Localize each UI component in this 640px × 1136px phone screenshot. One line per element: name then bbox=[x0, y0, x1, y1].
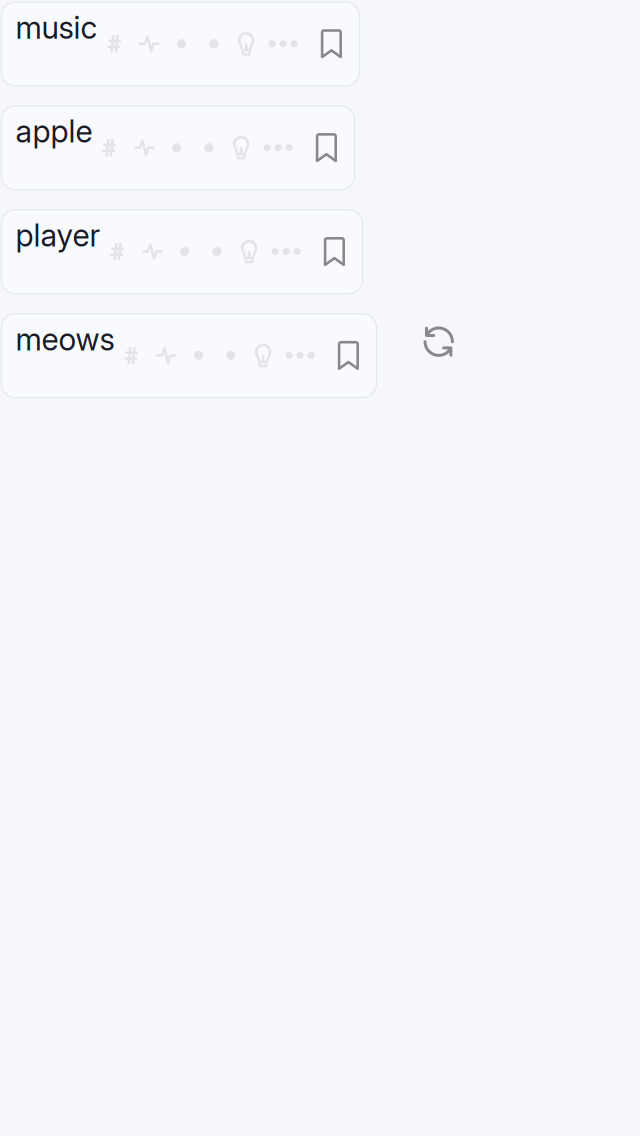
staticText: meows bbox=[15, 321, 114, 358]
button[interactable]: apple bbox=[1, 106, 354, 190]
button[interactable]: Refresh bbox=[415, 318, 462, 365]
button[interactable]: music bbox=[1, 2, 359, 86]
staticText: player bbox=[15, 217, 100, 254]
staticText: music bbox=[15, 9, 97, 46]
button[interactable]: meows bbox=[1, 314, 376, 398]
staticText: apple bbox=[15, 113, 92, 150]
button[interactable]: player bbox=[1, 210, 362, 294]
